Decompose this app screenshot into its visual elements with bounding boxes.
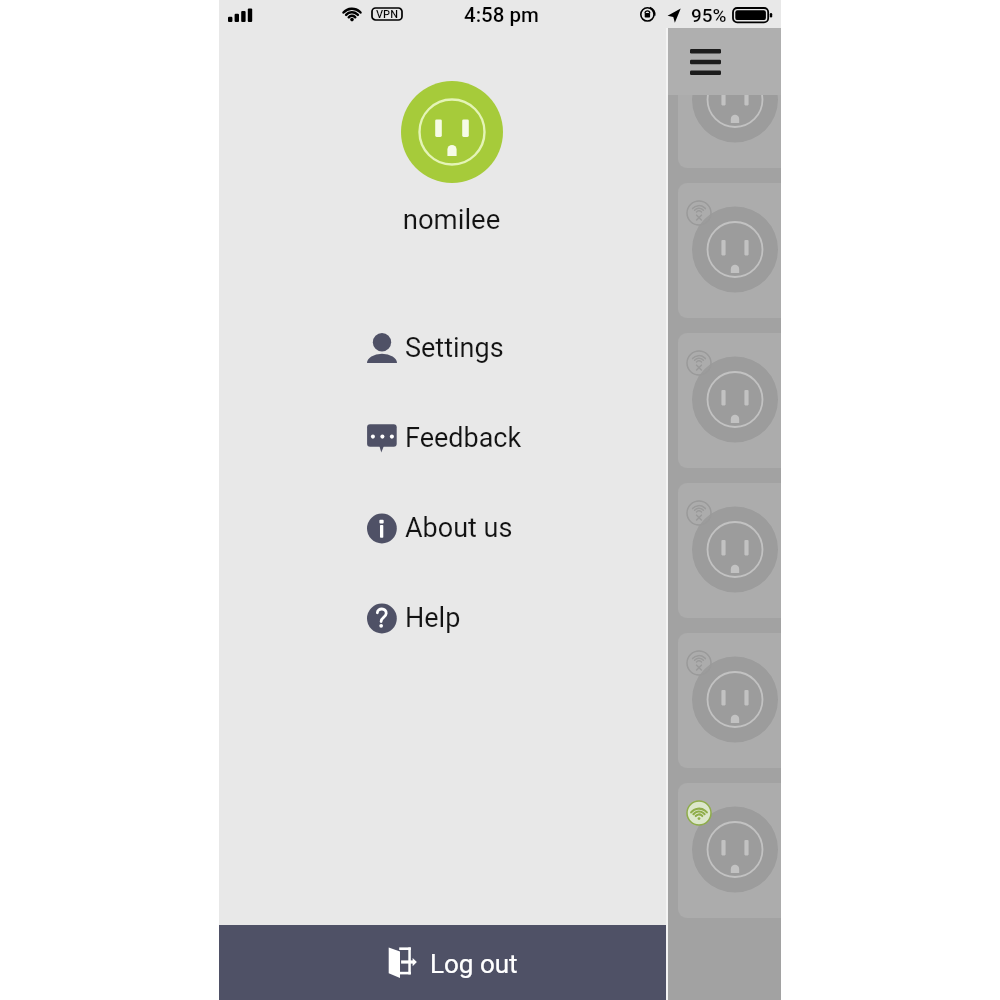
button[interactable] xyxy=(678,183,781,318)
staticText: Help xyxy=(405,602,461,634)
staticText: nomilee xyxy=(227,203,676,235)
button[interactable]: Settings xyxy=(219,317,668,379)
staticText: Settings xyxy=(405,332,504,364)
button[interactable] xyxy=(678,333,781,468)
staticText: 4:58 pm xyxy=(464,3,539,27)
button[interactable] xyxy=(678,783,781,918)
staticText: Log out xyxy=(430,949,518,979)
staticText: VPN xyxy=(376,8,398,21)
button[interactable]: Log out xyxy=(219,925,668,1000)
staticText: 95% xyxy=(691,4,727,26)
button[interactable] xyxy=(678,633,781,768)
button[interactable]: Feedback xyxy=(219,407,668,469)
button[interactable] xyxy=(678,483,781,618)
button[interactable]: Open navigation menu xyxy=(680,38,731,86)
button[interactable] xyxy=(678,33,781,168)
staticText: Feedback xyxy=(405,422,522,454)
staticText: About us xyxy=(405,512,513,544)
button[interactable]: About us xyxy=(219,497,668,559)
button[interactable]: Help xyxy=(219,587,668,649)
